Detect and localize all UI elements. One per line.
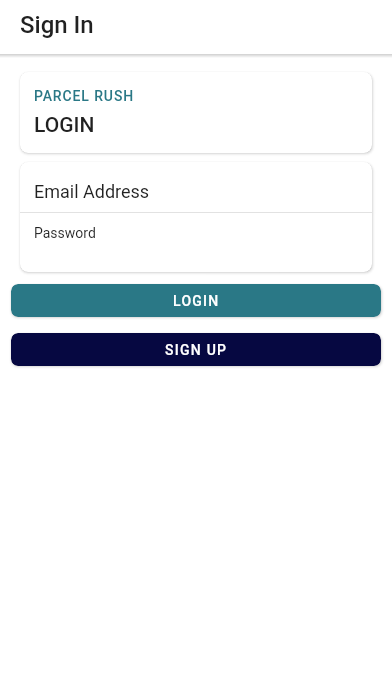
staticText: Password [34,225,96,241]
staticText: Sign In [20,11,94,39]
button[interactable]: SIGN UP [11,333,381,366]
staticText: PARCEL RUSH [34,88,135,104]
staticText: SIGN UP [165,342,228,358]
staticText: LOGIN [34,113,95,138]
button[interactable]: Email Address [20,162,372,212]
button[interactable]: Password [20,213,372,272]
staticText: Email Address [34,181,150,202]
button[interactable]: LOGIN [11,284,381,317]
staticText: LOGIN [173,293,220,309]
